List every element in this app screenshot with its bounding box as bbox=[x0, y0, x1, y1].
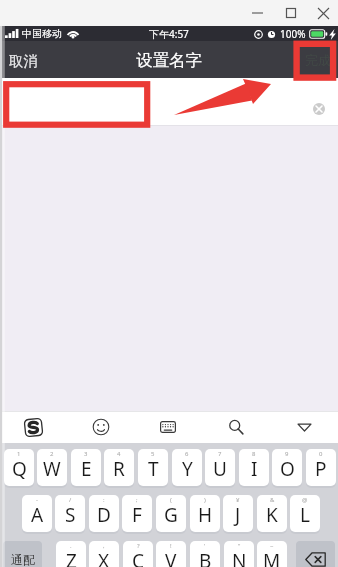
staticText: S bbox=[65, 502, 76, 528]
button[interactable]: W bbox=[37, 449, 67, 486]
button[interactable]: I bbox=[239, 449, 269, 486]
button[interactable]: U bbox=[205, 449, 235, 486]
button[interactable]: Hide keyboard bbox=[270, 411, 338, 443]
staticText: 8 bbox=[252, 450, 256, 458]
staticText: 9 bbox=[285, 450, 289, 458]
staticText: Q bbox=[12, 456, 27, 482]
staticText: U bbox=[213, 456, 227, 482]
staticText: P bbox=[315, 456, 327, 482]
staticText: " bbox=[238, 542, 241, 550]
staticText: ( bbox=[170, 496, 172, 504]
staticText: R bbox=[113, 456, 125, 482]
button[interactable]: Emoji bbox=[67, 411, 134, 443]
button[interactable]: C bbox=[123, 541, 153, 567]
staticText: 100% bbox=[280, 27, 306, 41]
staticText: L bbox=[300, 502, 310, 528]
staticText: I bbox=[251, 456, 258, 482]
button[interactable]: H bbox=[190, 495, 220, 532]
button[interactable]: B bbox=[190, 541, 220, 567]
button[interactable]: Clear text bbox=[312, 102, 326, 116]
staticText: : bbox=[103, 496, 105, 504]
button[interactable]: A bbox=[22, 495, 52, 532]
staticText: 5 bbox=[151, 450, 155, 458]
staticText: O bbox=[280, 456, 295, 482]
staticText: & bbox=[270, 496, 275, 504]
button[interactable]: 通配 bbox=[3, 541, 42, 567]
staticText: E bbox=[81, 456, 92, 482]
button[interactable]: R bbox=[104, 449, 134, 486]
staticText: ¥ bbox=[236, 496, 240, 504]
button[interactable]: Z bbox=[56, 541, 86, 567]
staticText: B bbox=[199, 548, 212, 567]
staticText: D bbox=[97, 502, 111, 528]
staticText: 中国移动 bbox=[22, 27, 62, 40]
button[interactable]: V bbox=[156, 541, 186, 567]
staticText: F bbox=[132, 502, 142, 528]
staticText: 1 bbox=[17, 450, 21, 458]
staticText: K bbox=[266, 502, 278, 528]
staticText: W bbox=[43, 456, 61, 482]
staticText: ~ bbox=[270, 542, 274, 550]
staticText: J bbox=[235, 502, 241, 528]
button[interactable]: J bbox=[223, 495, 253, 532]
staticText: V bbox=[165, 548, 177, 567]
staticText: - bbox=[36, 496, 38, 504]
staticText: 3 bbox=[84, 450, 88, 458]
staticText: 取消 bbox=[9, 52, 38, 70]
button[interactable]: M bbox=[257, 541, 287, 567]
staticText: T bbox=[148, 456, 159, 482]
button[interactable]: P bbox=[306, 449, 336, 486]
button[interactable]: S bbox=[55, 495, 85, 532]
staticText: G bbox=[164, 502, 178, 528]
staticText: 6 bbox=[185, 450, 189, 458]
staticText: ! bbox=[170, 542, 172, 550]
button[interactable]: Q bbox=[4, 449, 34, 486]
button[interactable]: 完成 bbox=[296, 41, 338, 78]
button[interactable]: N bbox=[224, 541, 254, 567]
staticText: H bbox=[198, 502, 213, 528]
staticText: Z bbox=[66, 548, 77, 567]
staticText: . bbox=[70, 542, 72, 550]
staticText: ; bbox=[136, 496, 138, 504]
button[interactable]: E bbox=[71, 449, 101, 486]
button[interactable]: Y bbox=[172, 449, 202, 486]
button[interactable]: T bbox=[138, 449, 168, 486]
staticText: @ bbox=[302, 496, 308, 504]
staticText: ) bbox=[204, 496, 206, 504]
staticText: ' bbox=[204, 542, 206, 550]
button[interactable]: K bbox=[257, 495, 287, 532]
staticText: 设置名字 bbox=[136, 50, 202, 71]
button[interactable]: L bbox=[290, 495, 320, 532]
button[interactable]: Maximize bbox=[274, 0, 308, 26]
staticText: Y bbox=[182, 456, 193, 482]
staticText: , bbox=[103, 542, 105, 550]
button[interactable]: Keyboard layout bbox=[134, 411, 202, 443]
staticText: 4 bbox=[117, 450, 121, 458]
button[interactable]: G bbox=[156, 495, 186, 532]
staticText: 通配 bbox=[11, 552, 35, 567]
button[interactable]: X bbox=[89, 541, 119, 567]
button[interactable]: D bbox=[89, 495, 119, 532]
button[interactable]: Sogou input bbox=[0, 411, 67, 443]
button[interactable]: Close bbox=[308, 0, 338, 26]
staticText: 0 bbox=[319, 450, 323, 458]
staticText: M bbox=[263, 548, 281, 567]
staticText: / bbox=[69, 496, 72, 504]
button[interactable]: F bbox=[122, 495, 152, 532]
button[interactable]: O bbox=[272, 449, 302, 486]
staticText: 下午4:57 bbox=[149, 27, 189, 41]
staticText: N bbox=[232, 548, 247, 567]
button[interactable]: Minimize bbox=[240, 0, 274, 26]
staticText: ? bbox=[137, 542, 140, 550]
staticText: 完成 bbox=[305, 52, 331, 68]
button[interactable]: Search bbox=[202, 411, 270, 443]
staticText: 2 bbox=[50, 450, 54, 458]
staticText: C bbox=[132, 548, 145, 567]
button[interactable]: Backspace bbox=[296, 541, 335, 567]
button[interactable]: 取消 bbox=[0, 41, 47, 78]
staticText: 7 bbox=[218, 450, 222, 458]
staticText: X bbox=[98, 548, 110, 567]
staticText: A bbox=[31, 502, 44, 528]
